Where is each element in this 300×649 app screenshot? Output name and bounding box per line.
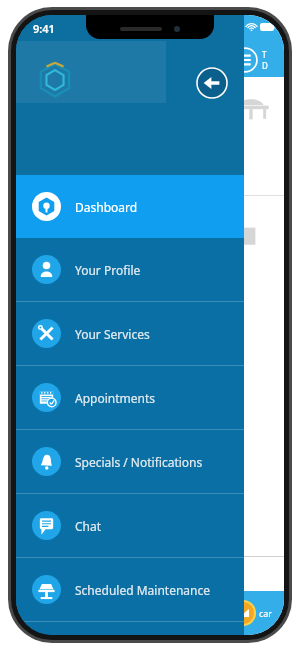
- staticText: Dashboard: [75, 199, 138, 215]
- button[interactable]: Back: [196, 67, 228, 99]
- staticText: T: [262, 49, 267, 60]
- button[interactable]: Chat: [16, 494, 244, 557]
- button[interactable]: Appointments: [16, 366, 244, 429]
- button[interactable]: Your Profile: [16, 238, 244, 301]
- button[interactable]: Specials / Notifications: [16, 430, 244, 493]
- button[interactable]: Scheduled Maintenance: [16, 558, 244, 621]
- button[interactable]: Dashboard: [16, 175, 244, 238]
- staticText: Specials / Notifications: [75, 454, 203, 470]
- button[interactable]: Your Services: [16, 302, 244, 365]
- staticText: Scheduled Maintenance: [75, 582, 211, 598]
- staticText: Your Services: [75, 326, 150, 342]
- staticText: D: [262, 60, 268, 71]
- staticText: Chat: [75, 518, 102, 534]
- staticText: Your Profile: [75, 262, 141, 278]
- button[interactable]: Messages: [230, 600, 256, 626]
- button[interactable]: Open navigation menu: [232, 47, 258, 73]
- staticText: Appointments: [75, 390, 156, 406]
- staticText: 9:41: [33, 21, 55, 36]
- staticText: car: [259, 607, 273, 619]
